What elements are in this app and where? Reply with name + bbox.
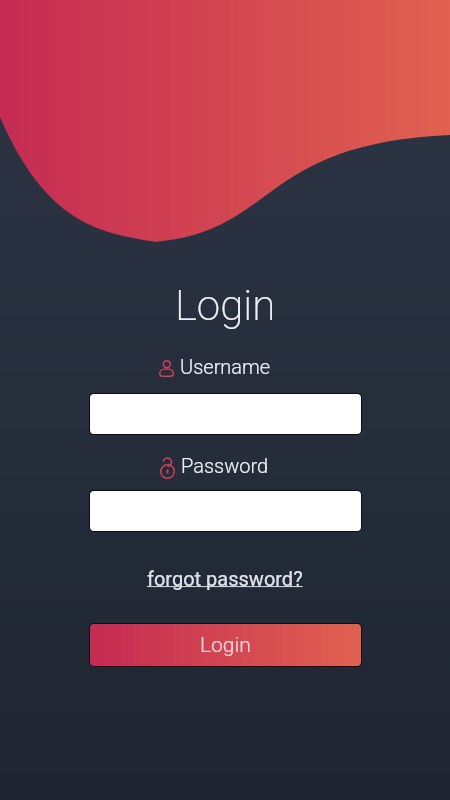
staticText: Password bbox=[181, 454, 269, 477]
button[interactable] bbox=[90, 394, 361, 434]
button[interactable]: Login bbox=[90, 624, 361, 666]
button[interactable]: forgot password? bbox=[141, 565, 309, 592]
other: Password bbox=[160, 458, 175, 479]
staticText: Username bbox=[180, 355, 271, 378]
staticText: Login bbox=[175, 281, 276, 330]
other: Username bbox=[159, 360, 174, 377]
staticText: Login bbox=[200, 633, 251, 658]
staticText: forgot password? bbox=[147, 567, 303, 590]
button[interactable] bbox=[90, 491, 361, 531]
